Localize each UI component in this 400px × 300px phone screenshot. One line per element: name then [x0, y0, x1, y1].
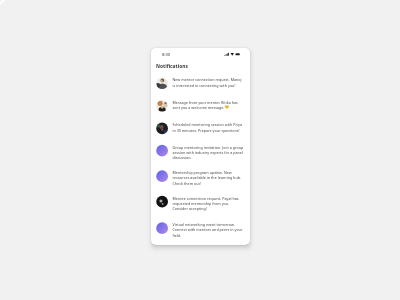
- staticText: New mentor connection request. Manoj: [172, 77, 242, 82]
- staticText: is interested in connecting with you!: [172, 82, 235, 87]
- button[interactable]: Group mentoring invitation. Join a group: [156, 144, 244, 160]
- staticText: sent you a welcome message.: [172, 105, 224, 110]
- staticText: 8:00: [162, 51, 170, 57]
- staticText: Message from your mentor Ritika has: [172, 100, 238, 105]
- staticText: Scheduled mentoring session with Priya: [172, 122, 242, 127]
- button[interactable]: Message from your mentor Ritika has: [156, 100, 244, 110]
- staticText: resources available in the learning hub.: [172, 175, 241, 180]
- button[interactable]: Scheduled mentoring session with Priya: [156, 122, 244, 133]
- staticText: Mentorship program update. New: [172, 170, 232, 175]
- button[interactable]: New mentor connection request. Manoj: [156, 77, 244, 88]
- staticText: Connect with mentors and peers in your: [172, 227, 242, 232]
- button[interactable]: Mentee connection request. Payal has: [156, 195, 244, 211]
- staticText: Virtual networking event tomorrow.: [172, 222, 235, 227]
- staticText: session with industry experts for a pane…: [172, 150, 243, 155]
- staticText: in 30 minutes. Prepare your questions!: [172, 127, 240, 132]
- staticText: Group mentoring invitation. Join a group: [172, 144, 243, 149]
- other: Status: [224, 53, 240, 56]
- staticText: Mentee connection request. Payal has: [172, 195, 239, 200]
- staticText: Notifications: [156, 63, 188, 69]
- button[interactable]: Virtual networking event tomorrow.: [156, 222, 244, 238]
- button[interactable]: Mentorship program update. New: [156, 170, 244, 186]
- staticText: discussion.: [172, 155, 192, 160]
- staticText: field.: [172, 232, 181, 237]
- staticText: requested mentorship from you.: [172, 201, 229, 206]
- staticText: Check them out!: [172, 180, 201, 185]
- staticText: Consider accepting!: [172, 206, 207, 211]
